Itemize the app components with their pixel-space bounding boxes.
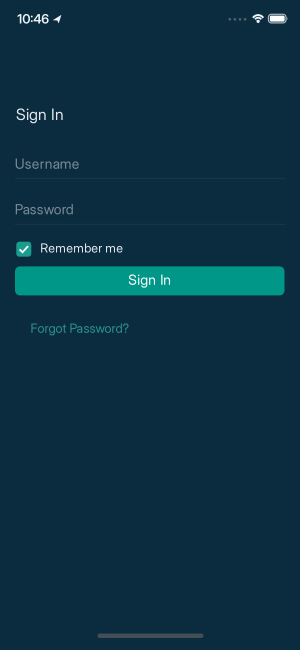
button[interactable]: Remember me [16,242,123,257]
button[interactable]: Username [15,155,286,181]
staticText: Sign In [16,105,64,124]
staticText: 10:46 [17,11,49,26]
staticText: Sign In [128,271,171,288]
button[interactable]: Sign In [15,266,284,295]
button[interactable]: Forgot Password? [30,320,129,336]
button[interactable]: Password [15,201,286,226]
staticText: Remember me [40,240,123,256]
staticText: Forgot Password? [30,320,129,336]
staticText: Password [15,201,74,217]
staticText: Username [15,155,80,172]
